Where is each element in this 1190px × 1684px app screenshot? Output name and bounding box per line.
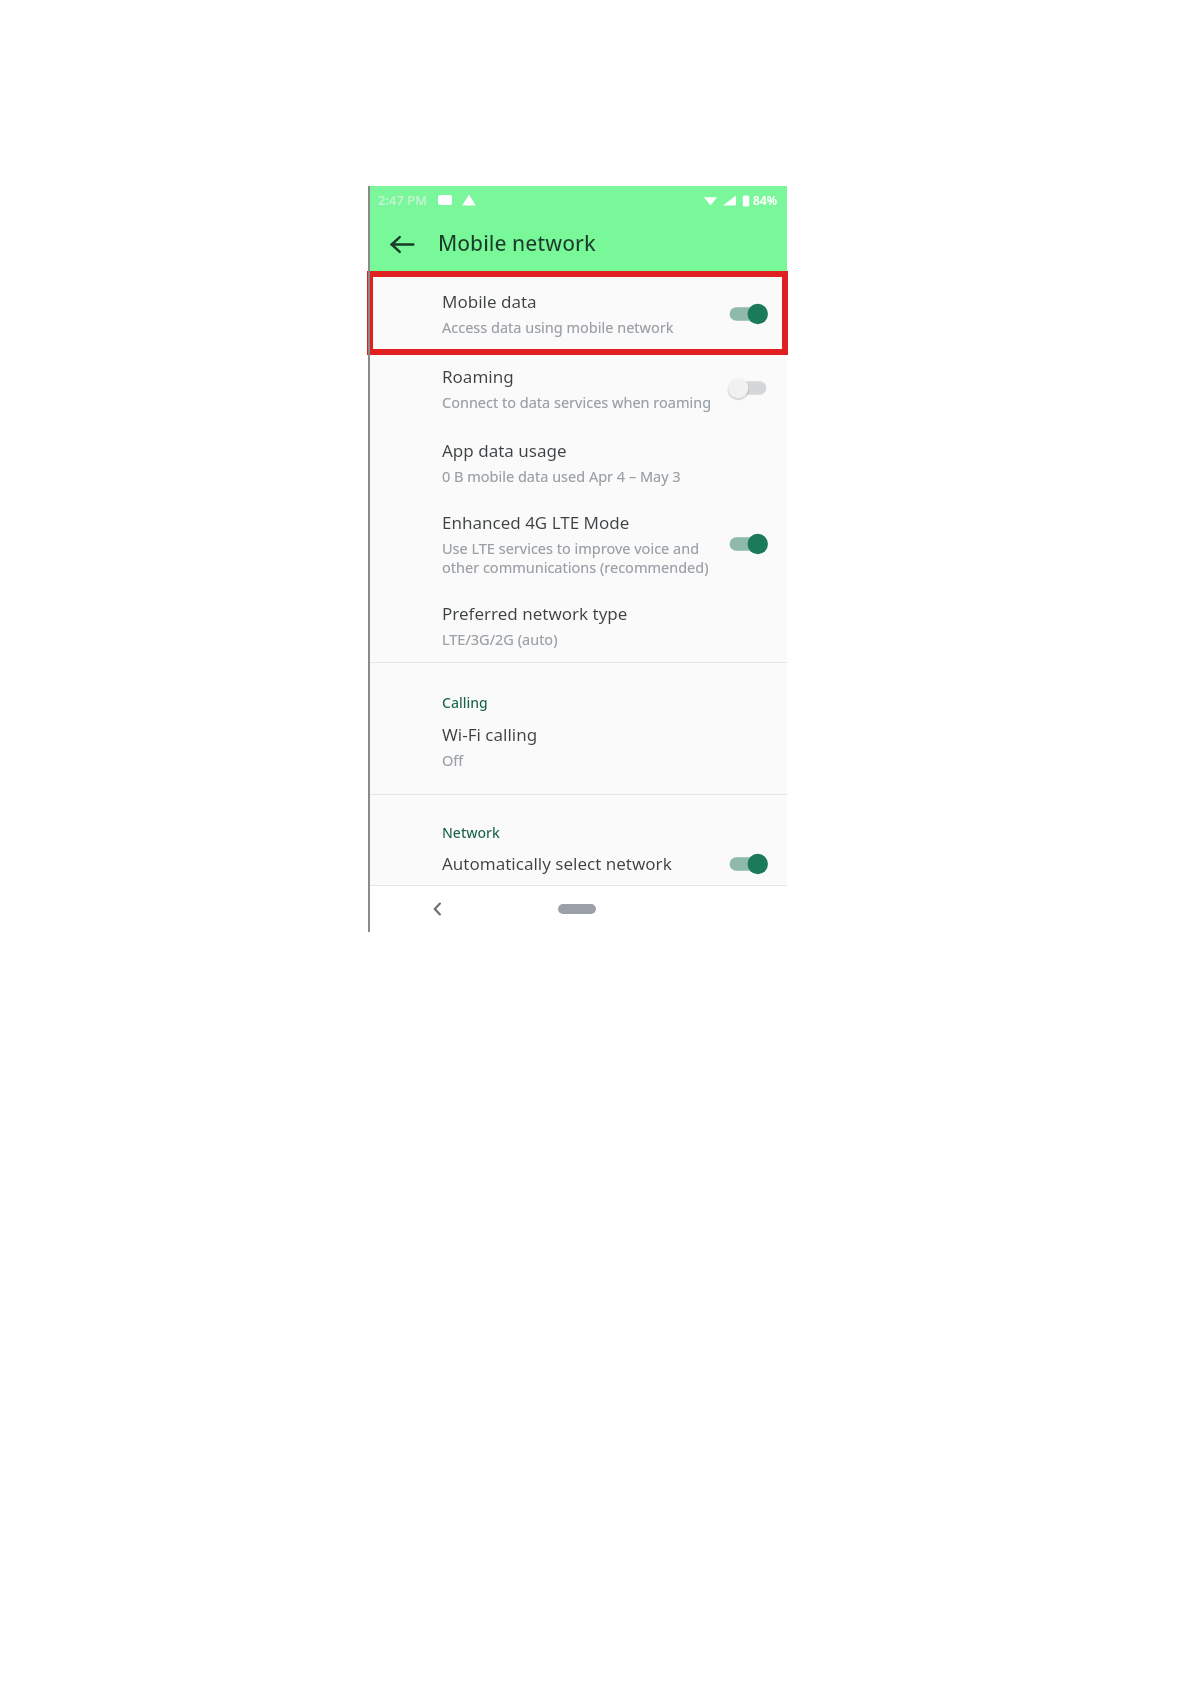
staticText: Network xyxy=(442,823,500,842)
staticText: Off xyxy=(442,750,464,770)
button[interactable]: Mobile data xyxy=(368,276,787,351)
staticText: Use LTE services to improve voice and ot… xyxy=(442,538,709,577)
staticText: App data usage xyxy=(442,439,567,462)
staticText: Mobile data xyxy=(442,290,537,313)
button[interactable]: Automatically select network xyxy=(368,842,787,885)
button[interactable]: Home xyxy=(507,885,647,932)
staticText: Access data using mobile network xyxy=(442,317,674,337)
button[interactable]: Preferred network type xyxy=(368,589,787,662)
staticText: Calling xyxy=(442,693,488,712)
button[interactable]: Back xyxy=(368,885,507,932)
staticText: Preferred network type xyxy=(442,602,628,625)
staticText: Enhanced 4G LTE Mode xyxy=(442,511,630,534)
staticText: 0 B mobile data used Apr 4 – May 3 xyxy=(442,466,681,486)
button[interactable]: Back xyxy=(380,222,424,266)
button[interactable]: Enhanced 4G LTE Mode xyxy=(368,499,787,589)
staticText: Connect to data services when roaming xyxy=(442,392,712,412)
staticText: Mobile network xyxy=(438,229,596,258)
button[interactable]: Roaming xyxy=(368,351,787,425)
staticText: Wi-Fi calling xyxy=(442,723,538,746)
button[interactable]: Toggle on xyxy=(725,527,771,561)
staticText: LTE/3G/2G (auto) xyxy=(442,629,558,649)
button[interactable]: Toggle on xyxy=(725,847,771,881)
staticText: Roaming xyxy=(442,365,514,388)
button[interactable]: Wi-Fi calling xyxy=(368,712,787,780)
staticText: Automatically select network xyxy=(442,852,672,875)
staticText: 84% xyxy=(753,192,777,208)
button[interactable]: Toggle on xyxy=(725,297,771,331)
button[interactable]: App data usage xyxy=(368,425,787,499)
staticText: 2:47 PM xyxy=(378,191,428,209)
button[interactable]: Toggle off xyxy=(725,371,771,405)
